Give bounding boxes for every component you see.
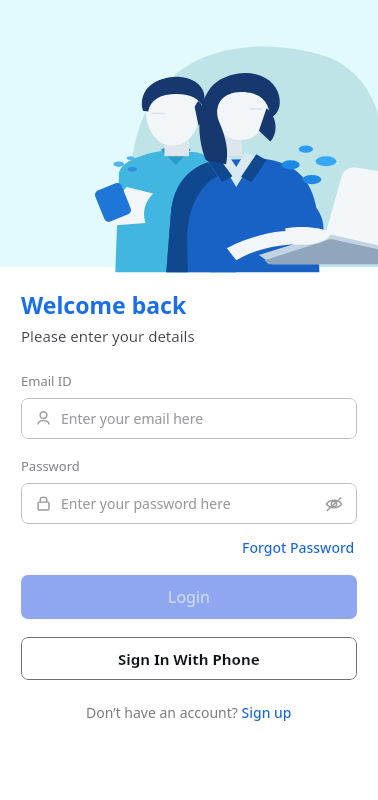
staticText: Enter your email here <box>61 409 204 428</box>
button[interactable]: Forgot Password <box>240 536 357 559</box>
other: Show password <box>325 495 343 513</box>
staticText: Enter your password here <box>61 494 231 513</box>
staticText: Don’t have an account? Sign up <box>86 703 292 722</box>
staticText: Sign In With Phone <box>118 649 260 669</box>
staticText: Password <box>21 457 80 475</box>
staticText: Forgot Password <box>242 538 355 557</box>
button[interactable]: Enter your password here <box>21 483 357 524</box>
button[interactable]: Sign In With Phone <box>21 637 357 680</box>
staticText: Welcome back <box>21 289 187 320</box>
button[interactable]: Enter your email here <box>21 398 357 439</box>
button[interactable]: Login <box>21 575 357 619</box>
button[interactable]: Don’t have an account? Sign up <box>84 701 294 724</box>
staticText: Please enter your details <box>21 326 195 346</box>
staticText: Email ID <box>21 372 72 390</box>
staticText: Login <box>168 586 210 608</box>
